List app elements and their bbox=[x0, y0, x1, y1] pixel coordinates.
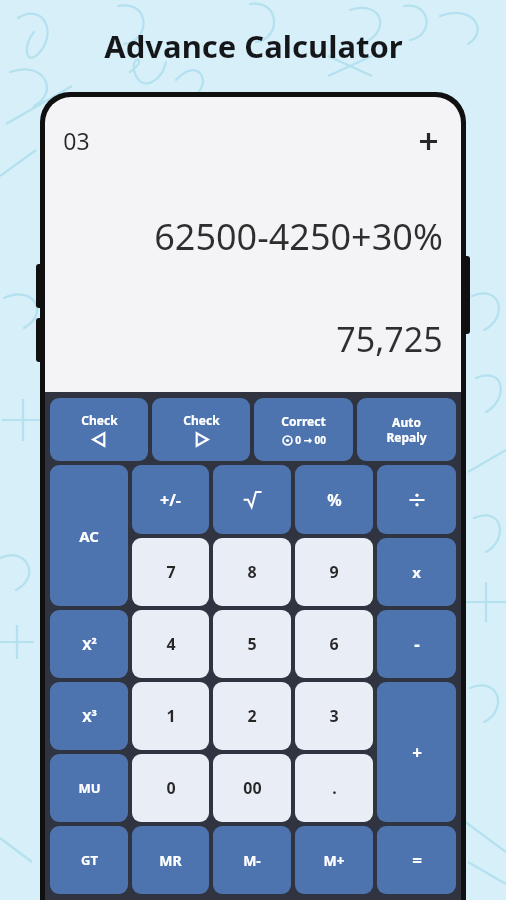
staticText: Advance Calculator bbox=[104, 25, 403, 67]
staticText: 0 → 00 bbox=[295, 433, 326, 447]
button[interactable]: Add bbox=[413, 126, 443, 156]
staticText: 1 bbox=[166, 705, 176, 727]
button[interactable]: x bbox=[377, 538, 456, 606]
staticText: - bbox=[414, 633, 420, 656]
staticText: % bbox=[327, 489, 342, 511]
staticText: 6 bbox=[329, 633, 339, 655]
button[interactable]: M+ bbox=[295, 826, 373, 894]
button[interactable]: MR bbox=[132, 826, 209, 894]
button[interactable]: 4 bbox=[132, 610, 209, 678]
button[interactable]: + bbox=[377, 682, 456, 822]
button[interactable]: 0 bbox=[132, 754, 209, 822]
button[interactable]: AC bbox=[50, 465, 128, 606]
button[interactable]: GT bbox=[50, 826, 128, 894]
button[interactable]: Auto Repaly bbox=[357, 398, 456, 461]
staticText: . bbox=[332, 777, 337, 799]
staticText: GT bbox=[81, 851, 98, 869]
staticText: M- bbox=[243, 851, 261, 870]
button[interactable]: Check bbox=[152, 398, 250, 461]
staticText: 8 bbox=[247, 561, 257, 583]
button[interactable]: 5 bbox=[213, 610, 291, 678]
button[interactable]: 2 bbox=[213, 682, 291, 750]
staticText: 03 bbox=[63, 125, 90, 156]
staticText: 3 bbox=[329, 705, 339, 727]
button[interactable]: 8 bbox=[213, 538, 291, 606]
staticText: Auto Repaly bbox=[386, 414, 427, 445]
staticText: MU bbox=[78, 779, 101, 797]
button[interactable]: X² bbox=[50, 610, 128, 678]
staticText: 0 bbox=[166, 777, 176, 799]
button[interactable]: +/- bbox=[132, 465, 209, 534]
button[interactable]: Check bbox=[50, 398, 148, 461]
button[interactable]: 9 bbox=[295, 538, 373, 606]
button[interactable]: Square root bbox=[213, 465, 291, 534]
button[interactable]: 7 bbox=[132, 538, 209, 606]
staticText: Correct bbox=[281, 413, 326, 429]
staticText: 75,725 bbox=[336, 316, 443, 362]
staticText: 5 bbox=[247, 633, 257, 655]
staticText: AC bbox=[79, 526, 99, 546]
staticText: = bbox=[412, 849, 422, 872]
staticText: + bbox=[412, 741, 422, 764]
button[interactable]: Divide bbox=[377, 465, 456, 534]
button[interactable]: = bbox=[377, 826, 456, 894]
button[interactable]: MU bbox=[50, 754, 128, 822]
staticText: X³ bbox=[82, 707, 97, 726]
staticText: M+ bbox=[323, 851, 345, 870]
button[interactable]: 6 bbox=[295, 610, 373, 678]
staticText: Check bbox=[183, 412, 220, 428]
staticText: +/- bbox=[160, 489, 181, 511]
button[interactable]: 1 bbox=[132, 682, 209, 750]
staticText: X² bbox=[82, 635, 97, 654]
button[interactable]: - bbox=[377, 610, 456, 678]
staticText: 62500-4250+30% bbox=[154, 212, 443, 261]
staticText: 7 bbox=[166, 561, 176, 583]
staticText: Check bbox=[81, 412, 118, 428]
button[interactable]: % bbox=[295, 465, 373, 534]
button[interactable]: M- bbox=[213, 826, 291, 894]
button[interactable]: X³ bbox=[50, 682, 128, 750]
staticText: 2 bbox=[247, 705, 257, 727]
button[interactable]: 3 bbox=[295, 682, 373, 750]
staticText: MR bbox=[159, 851, 182, 870]
button[interactable]: Correct bbox=[254, 398, 353, 461]
staticText: 4 bbox=[166, 633, 176, 655]
staticText: 9 bbox=[329, 561, 339, 583]
button[interactable]: 00 bbox=[213, 754, 291, 822]
button[interactable]: . bbox=[295, 754, 373, 822]
staticText: 00 bbox=[243, 777, 262, 799]
staticText: x bbox=[412, 562, 421, 582]
